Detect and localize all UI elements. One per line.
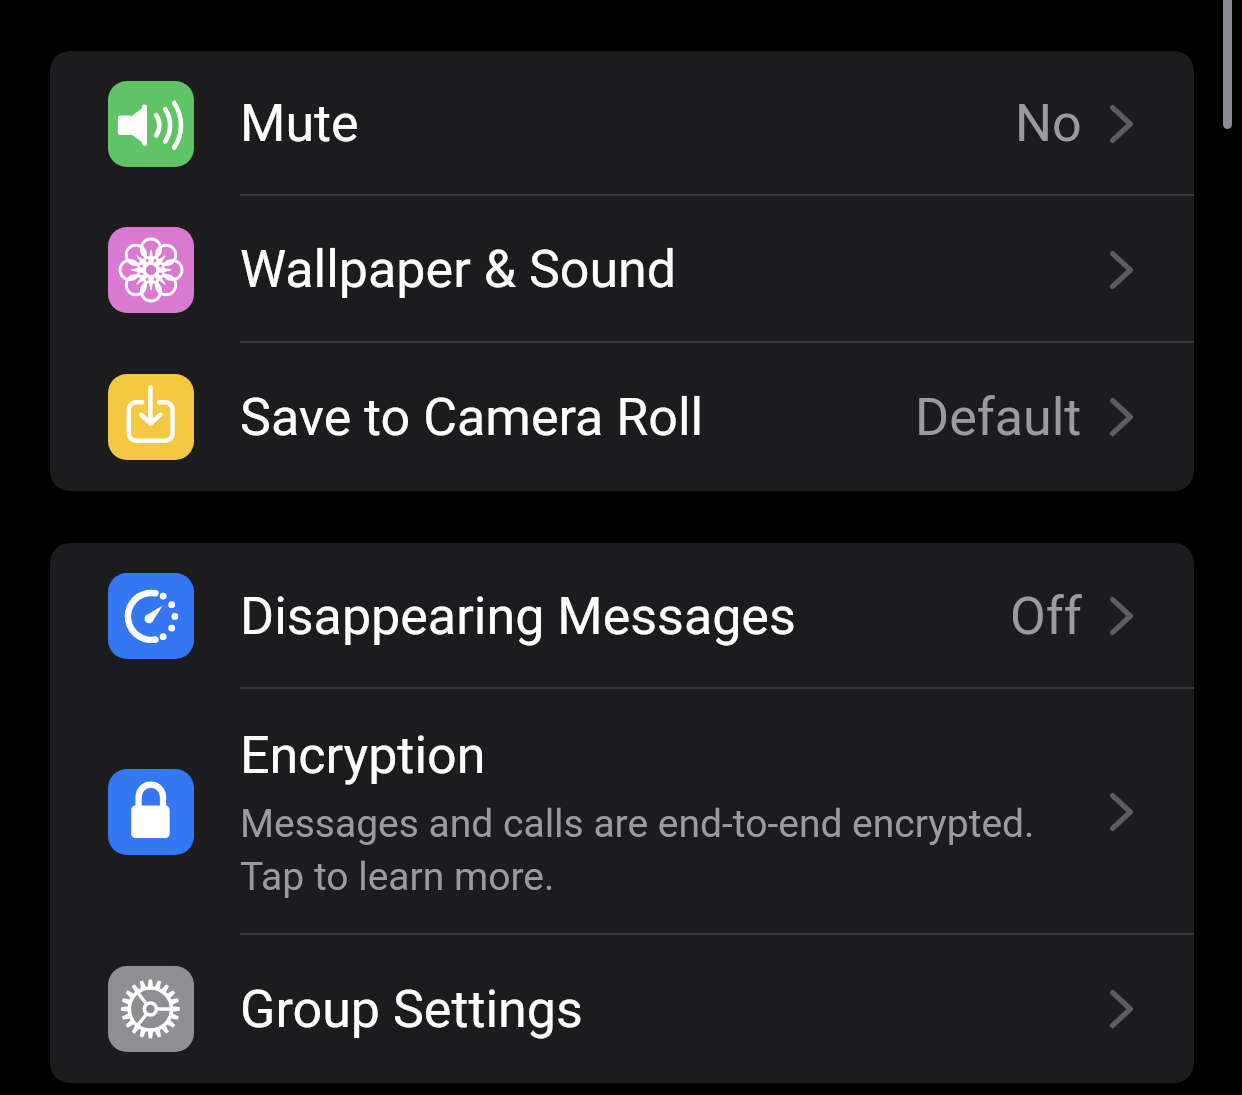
staticText: Group Settings: [240, 979, 583, 1040]
button[interactable]: Wallpaper & Sound: [50, 196, 1194, 343]
button[interactable]: Save to Camera Roll: [50, 343, 1194, 491]
staticText: Disappearing Messages: [240, 586, 796, 647]
button[interactable]: Encryption: [50, 689, 1194, 935]
staticText: Save to Camera Roll: [240, 387, 704, 448]
staticText: Messages and calls are end-to-end encryp…: [240, 801, 1035, 899]
staticText: Default: [915, 387, 1082, 448]
staticText: Wallpaper & Sound: [240, 239, 677, 300]
staticText: No: [1015, 93, 1082, 154]
staticText: Mute: [240, 93, 359, 154]
button[interactable]: Mute: [50, 51, 1194, 196]
button[interactable]: Group Settings: [50, 935, 1194, 1083]
staticText: Encryption: [240, 725, 486, 786]
staticText: Off: [1010, 586, 1082, 647]
button[interactable]: Disappearing Messages: [50, 543, 1194, 689]
